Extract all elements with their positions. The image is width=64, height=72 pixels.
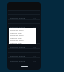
staticText: On <box>33 12 37 15</box>
button[interactable]: Display name <box>7 58 41 62</box>
staticText: Display name <box>10 16 26 19</box>
button[interactable]: Display name <box>7 20 41 24</box>
button[interactable]: Display name <box>7 24 41 28</box>
button[interactable]: Display name <box>7 11 41 15</box>
button[interactable]: Settings item <box>10 34 24 36</box>
button[interactable]: Option row <box>10 42 22 44</box>
staticText: Display name <box>10 25 26 28</box>
staticText: Settings item <box>10 29 24 31</box>
button[interactable]: Option row <box>10 32 22 34</box>
button[interactable]: Settings item <box>10 29 24 31</box>
staticText: On <box>33 59 37 62</box>
staticText: Settings item <box>10 39 24 41</box>
button[interactable]: Display name <box>7 44 41 48</box>
staticText: Display name <box>10 12 26 15</box>
staticText: Display name <box>10 59 26 62</box>
button[interactable]: Option row <box>10 37 22 39</box>
staticText: On <box>33 21 37 24</box>
staticText: Display name <box>10 50 26 53</box>
button[interactable]: Display name <box>7 49 41 53</box>
staticText: On <box>33 16 37 19</box>
button[interactable]: Settings item <box>10 39 24 41</box>
staticText: Display name <box>10 45 26 48</box>
staticText: On <box>33 25 37 28</box>
staticText: On <box>33 54 37 57</box>
staticText: On <box>33 45 37 48</box>
staticText: Display name <box>10 54 26 57</box>
staticText: Option row <box>10 37 22 39</box>
staticText: Settings item <box>10 34 24 36</box>
staticText: Display name <box>10 21 26 24</box>
button[interactable]: Display name <box>7 15 41 19</box>
staticText: Option row <box>10 32 22 34</box>
staticText: On <box>33 50 37 53</box>
staticText: Option row <box>10 42 22 44</box>
button[interactable]: Display name <box>7 53 41 57</box>
